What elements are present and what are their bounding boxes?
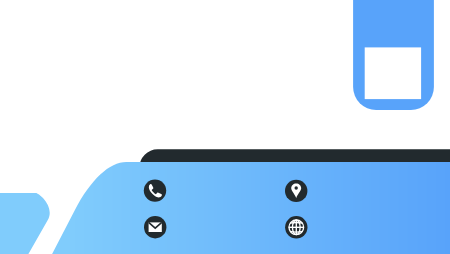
button[interactable]: Call [144,179,167,202]
button[interactable]: Website [285,216,308,239]
button[interactable]: Location [285,180,308,203]
button[interactable]: Email [144,216,167,239]
